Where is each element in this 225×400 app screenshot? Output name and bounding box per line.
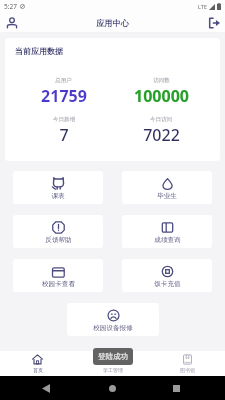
- staticText: 成绩查询: [154, 236, 181, 244]
- staticText: 当前应用数据: [15, 46, 63, 56]
- staticText: 饭卡充值: [154, 280, 181, 288]
- staticText: 7: [59, 124, 69, 146]
- button[interactable]: 首页: [0, 351, 75, 376]
- staticText: 反馈帮助: [45, 236, 72, 244]
- staticText: 毕业生: [157, 192, 177, 200]
- staticText: LTE: [198, 3, 207, 10]
- staticText: 学工管理: [103, 367, 123, 373]
- button[interactable]: 校园设备报修: [67, 303, 159, 336]
- button[interactable]: 反馈帮助: [13, 215, 103, 248]
- button[interactable]: 图书馆: [150, 351, 225, 376]
- button[interactable]: 校园卡查看: [13, 259, 103, 292]
- staticText: 7022: [143, 124, 180, 146]
- staticText: 登陆成功: [98, 352, 128, 361]
- staticText: 5:27: [4, 2, 17, 11]
- button[interactable]: Logout: [205, 14, 222, 31]
- staticText: 校园设备报修: [93, 324, 133, 332]
- button[interactable]: Back: [42, 384, 50, 393]
- button[interactable]: 毕业生: [122, 171, 212, 204]
- staticText: 100000: [134, 85, 189, 107]
- staticText: 应用中心: [96, 18, 129, 28]
- button[interactable]: Home: [109, 385, 116, 392]
- staticText: 总用户: [55, 77, 72, 84]
- staticText: 访问数: [153, 77, 170, 84]
- staticText: 今日访问: [150, 116, 172, 123]
- button[interactable]: 学工管理: [75, 351, 150, 376]
- button[interactable]: 饭卡充值: [122, 259, 212, 292]
- staticText: 课表: [51, 192, 65, 200]
- staticText: 21759: [41, 85, 87, 107]
- staticText: 今日新增: [53, 116, 75, 123]
- button[interactable]: 成绩查询: [122, 215, 212, 248]
- button[interactable]: 课表: [13, 171, 103, 204]
- staticText: 图书馆: [180, 367, 195, 373]
- staticText: 首页: [33, 367, 43, 373]
- staticText: 校园卡查看: [42, 280, 75, 288]
- button[interactable]: Profile: [3, 14, 20, 31]
